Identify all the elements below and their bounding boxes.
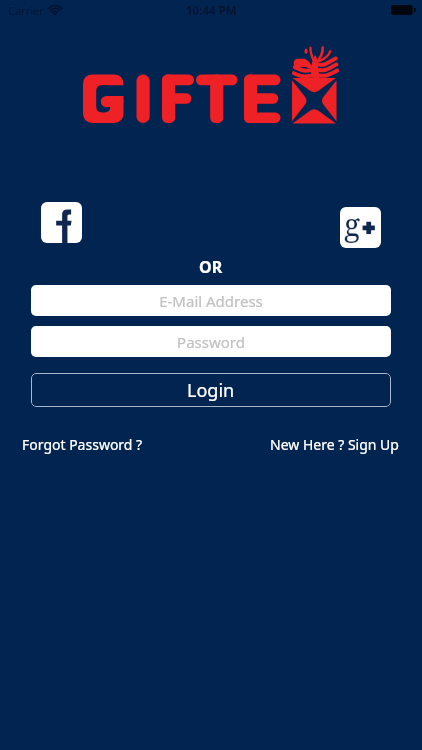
button[interactable]: Login	[31, 373, 391, 407]
button[interactable]: Forgot Password ?	[16, 431, 149, 458]
button[interactable]: E-Mail Address	[31, 285, 391, 316]
staticText: 10:44 PM	[186, 3, 237, 19]
staticText: g	[344, 207, 361, 245]
staticText: Forgot Password ?	[22, 435, 143, 454]
button[interactable]: Sign in with Facebook	[41, 202, 82, 243]
button[interactable]: Sign in with Google Plus	[340, 207, 381, 248]
staticText: OR	[199, 256, 223, 278]
staticText: Carrier	[8, 3, 44, 18]
button[interactable]: New Here ? Sign Up	[264, 431, 405, 458]
staticText: New Here ? Sign Up	[270, 435, 399, 454]
button[interactable]: Password	[31, 326, 391, 357]
staticText: Login	[187, 378, 235, 403]
staticText: Password	[177, 332, 245, 352]
staticText: E-Mail Address	[159, 291, 263, 311]
